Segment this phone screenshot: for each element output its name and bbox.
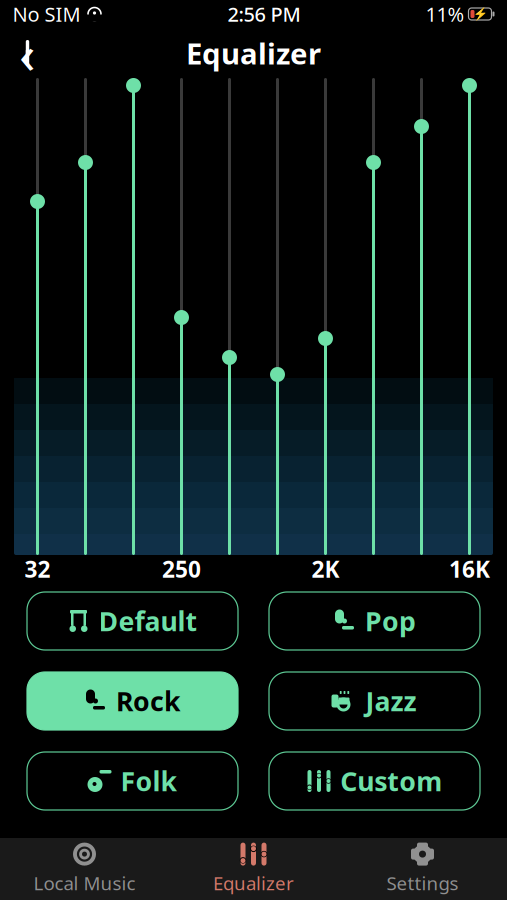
staticText: 32 (24, 554, 50, 584)
button[interactable]: Settings (338, 839, 507, 899)
button[interactable]: Custom (269, 752, 480, 810)
button[interactable]: Rock (27, 672, 238, 730)
staticText: 2:56 PM (227, 1, 300, 27)
staticText: Equalizer (213, 871, 294, 895)
staticText: ⚡ (472, 7, 487, 21)
staticText: 250 (162, 554, 201, 584)
staticText: Equalizer (186, 33, 321, 72)
staticText: ‹ (19, 18, 36, 88)
staticText: Rock (116, 683, 181, 719)
staticText: Default (98, 603, 197, 639)
button[interactable]: Local Music (0, 839, 169, 899)
staticText: No SIM (12, 1, 80, 27)
staticText: Local Music (33, 871, 135, 895)
staticText: 16K (449, 554, 490, 584)
button[interactable]: Pop (269, 592, 480, 650)
staticText: Jazz (365, 683, 416, 719)
staticText: Pop (365, 603, 416, 639)
staticText: Folk (120, 763, 177, 799)
staticText: Settings (386, 871, 458, 895)
button[interactable]: Default (27, 592, 238, 650)
button[interactable]: Back (10, 36, 44, 70)
staticText: 11% (425, 1, 464, 27)
button[interactable]: Folk (27, 752, 238, 810)
button[interactable]: Equalizer (169, 839, 338, 899)
button[interactable]: Jazz (269, 672, 480, 730)
staticText: Custom (340, 763, 442, 799)
staticText: 2K (311, 554, 339, 584)
